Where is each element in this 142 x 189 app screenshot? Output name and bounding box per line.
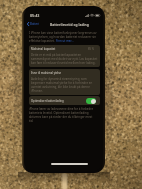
staticText: Batterilevetid og lading [50, 22, 89, 26]
staticText: sammenlignet med da det var nytt. Lav ka… [31, 57, 98, 61]
staticText: kan føre til redusert levetid mellom hve… [31, 61, 96, 65]
staticText: iPhonen. [31, 89, 44, 93]
staticText: iPhone lærer av ladevanene dine for å fo… [29, 107, 94, 111]
staticText: 05:43 [30, 13, 40, 18]
button[interactable]: Optimalisert batterilading [29, 96, 100, 105]
staticText: Batteri [30, 22, 40, 26]
button[interactable]: Evne til maksimal ytelse [29, 69, 100, 95]
staticText: Maksimal kapasitet [31, 47, 56, 51]
button[interactable]: Batteri [27, 22, 40, 26]
staticText: Dette er et mål på batterikapasiteten [31, 53, 82, 57]
staticText: Avdeling for dynamisk strømstyring, som [31, 77, 87, 81]
button[interactable]: Finn ut mer… [56, 39, 74, 43]
button[interactable]: Maksimal kapasitet [29, 45, 100, 67]
staticText: uventet avslutning, ble ikke brukt på de… [31, 85, 90, 89]
other: Optimalisert batterilading, på [86, 98, 96, 104]
staticText: I iPhone kan visse batterifunksjoner beg… [29, 31, 97, 35]
staticText: batteriets levetid. Optimalisert batteri… [29, 111, 89, 115]
staticText: aktiveres bare på steder der du tilbring… [29, 115, 93, 119]
staticText: begrenser maksimal ytelse for å forhindr… [31, 81, 93, 85]
staticText: 85 % [88, 47, 95, 51]
staticText: Evne til maksimal ytelse [31, 71, 61, 75]
staticText: Optimalisert batterilading [31, 99, 64, 103]
staticText: tid. [29, 119, 34, 123]
staticText: batteriytelsen, og hvordan batteriet red… [29, 35, 97, 39]
staticText: effektive kapasitet. [29, 39, 56, 43]
